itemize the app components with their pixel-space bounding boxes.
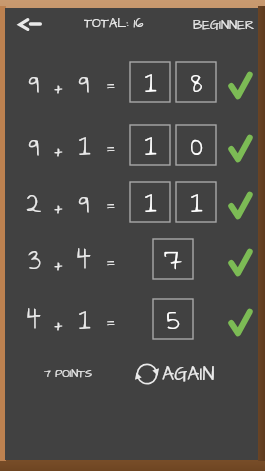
staticText: 9 xyxy=(78,179,90,215)
staticText: = xyxy=(106,127,115,159)
button[interactable]: 1 xyxy=(130,182,170,222)
staticText: = xyxy=(106,64,115,96)
button[interactable]: BEGINNER xyxy=(188,10,260,40)
button[interactable]: 5 xyxy=(153,299,193,339)
staticText: 9 xyxy=(78,59,90,95)
staticText: 1 xyxy=(78,122,91,158)
staticText: 1 xyxy=(144,122,157,162)
staticText: = xyxy=(106,241,115,273)
staticText: + xyxy=(54,247,63,279)
staticText: + xyxy=(54,190,63,222)
staticText: 7 xyxy=(164,236,182,276)
staticText: 4 xyxy=(77,236,91,272)
staticText: 3 xyxy=(28,236,41,272)
staticText: AGAIN xyxy=(162,361,215,387)
button[interactable]: 1 xyxy=(130,62,170,102)
button[interactable]: 0 xyxy=(176,125,216,165)
staticText: 2 xyxy=(26,179,42,215)
staticText: = xyxy=(106,301,115,333)
staticText: 5 xyxy=(166,296,180,336)
staticText: = xyxy=(106,184,115,216)
staticText: + xyxy=(54,133,63,165)
staticText: + xyxy=(54,307,63,339)
staticText: BEGINNER xyxy=(193,16,255,34)
button[interactable]: AGAIN xyxy=(132,357,219,391)
staticText: 9 xyxy=(28,122,40,158)
staticText: 7 POINTS xyxy=(44,366,93,381)
staticText: 8 xyxy=(190,59,203,99)
staticText: 1 xyxy=(190,179,203,219)
staticText: TOTAL: 16 xyxy=(84,14,144,32)
staticText: 1 xyxy=(144,59,157,99)
staticText: 4 xyxy=(27,296,41,332)
button[interactable]: 7 xyxy=(153,239,193,279)
staticText: 9 xyxy=(28,59,40,95)
staticText: + xyxy=(54,70,63,102)
staticText: 0 xyxy=(190,122,203,162)
button[interactable]: 1 xyxy=(130,125,170,165)
staticText: 1 xyxy=(144,179,157,219)
button[interactable]: 1 xyxy=(176,182,216,222)
staticText: 1 xyxy=(78,296,91,332)
button[interactable]: 8 xyxy=(176,62,216,102)
button[interactable]: Back xyxy=(13,10,53,42)
